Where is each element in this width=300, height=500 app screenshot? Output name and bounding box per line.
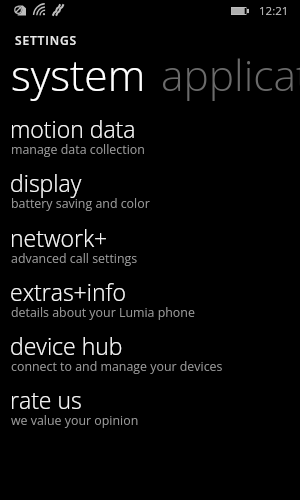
other: No SIM card bbox=[14, 4, 26, 16]
staticText: details about your Lumia phone bbox=[11, 304, 195, 321]
staticText: 12:21 bbox=[259, 3, 289, 19]
other: Cellular data bbox=[52, 4, 64, 16]
staticText: we value your opinion bbox=[11, 412, 139, 429]
staticText: advanced call settings bbox=[11, 250, 138, 267]
staticText: display bbox=[10, 167, 82, 198]
staticText: device hub bbox=[10, 330, 123, 361]
button[interactable]: device hub bbox=[0, 334, 300, 388]
other: Battery bbox=[231, 7, 249, 15]
button[interactable]: extras+info bbox=[0, 280, 300, 334]
button[interactable]: system bbox=[11, 46, 146, 104]
staticText: SETTINGS bbox=[15, 32, 78, 48]
button[interactable]: motion data bbox=[0, 117, 300, 171]
staticText: connect to and manage your devices bbox=[11, 358, 223, 375]
other: Wi-Fi signal bbox=[34, 4, 46, 16]
button[interactable]: display bbox=[0, 171, 300, 225]
staticText: manage data collection bbox=[11, 141, 145, 158]
staticText: rate us bbox=[10, 384, 82, 415]
staticText: battery saving and color bbox=[11, 195, 150, 212]
button[interactable]: applications bbox=[161, 46, 300, 104]
staticText: network+ bbox=[10, 222, 108, 253]
staticText: extras+info bbox=[10, 276, 126, 307]
button[interactable]: network+ bbox=[0, 226, 300, 280]
button[interactable]: rate us bbox=[0, 388, 300, 442]
staticText: motion data bbox=[10, 113, 136, 144]
